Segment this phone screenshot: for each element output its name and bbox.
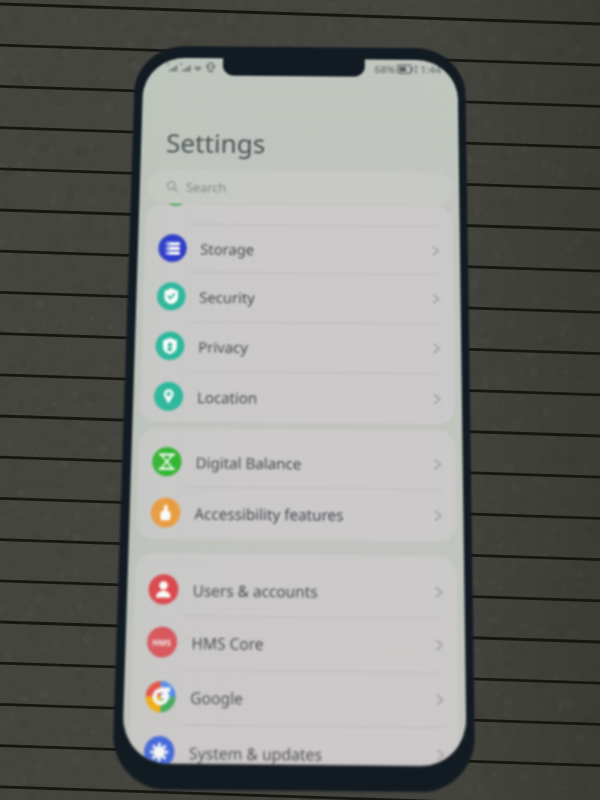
button[interactable]: Storage [144, 224, 453, 275]
staticText: HMS [152, 636, 172, 648]
staticText: Storage [200, 239, 254, 259]
button[interactable]: Privacy [141, 321, 455, 374]
staticText: Location [197, 387, 258, 408]
staticText: 68% [374, 62, 396, 76]
button[interactable]: System & updates [129, 724, 459, 766]
staticText: Digital Balance [195, 452, 302, 473]
button[interactable]: Google [130, 669, 459, 727]
staticText: Settings [166, 125, 266, 161]
staticText: System & updates [189, 742, 322, 765]
staticText: Search [186, 179, 227, 196]
staticText: 1:44 [420, 62, 441, 76]
staticText: Users & accounts [192, 580, 318, 602]
button[interactable]: Users & accounts [133, 562, 458, 619]
button[interactable]: Security [142, 271, 454, 323]
button[interactable]: Location [139, 371, 455, 424]
button[interactable]: HMS [132, 615, 458, 672]
button[interactable]: Digital Balance [137, 436, 456, 490]
staticText: HMS Core [191, 632, 264, 654]
button[interactable]: Accessibility features [136, 486, 457, 541]
staticText: Security [199, 287, 256, 307]
staticText: Google [190, 687, 243, 709]
staticText: Privacy [198, 337, 249, 357]
staticText: Accessibility features [194, 503, 344, 525]
button[interactable]: Search [146, 170, 453, 205]
